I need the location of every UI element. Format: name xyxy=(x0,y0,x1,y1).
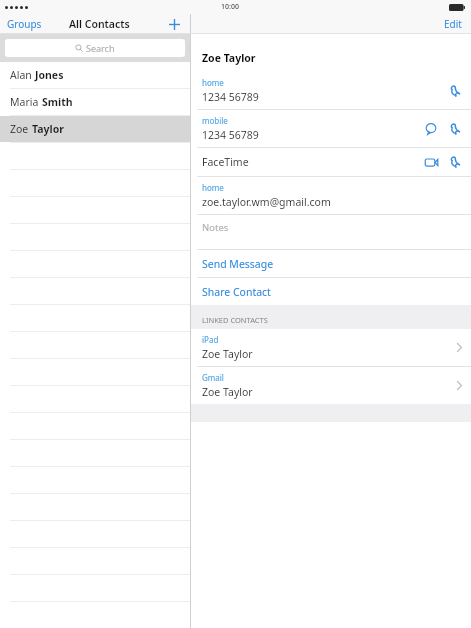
button[interactable]: Groups xyxy=(4,15,45,33)
staticText: Zoe Taylor xyxy=(202,51,256,65)
staticText: 1234 56789 xyxy=(202,90,259,104)
button[interactable]: Notes xyxy=(191,215,471,249)
button[interactable]: FaceTime xyxy=(191,148,471,176)
staticText: Jones xyxy=(35,68,64,82)
button[interactable]: iPad xyxy=(191,329,471,366)
button[interactable]: Edit xyxy=(441,15,465,33)
staticText: zoe.taylor.wm@gmail.com xyxy=(202,195,331,209)
staticText: Alan xyxy=(10,68,35,82)
button[interactable]: mobile xyxy=(191,110,471,147)
staticText: iPad xyxy=(202,334,219,345)
staticText: Zoe Taylor xyxy=(202,347,253,361)
button[interactable]: Share Contact xyxy=(191,278,471,305)
button[interactable]: FaceTime video xyxy=(423,154,439,170)
staticText: FaceTime xyxy=(202,155,249,169)
button[interactable]: Maria xyxy=(0,89,190,115)
button[interactable]: Alan xyxy=(0,62,190,88)
staticText: All Contacts xyxy=(69,17,130,31)
staticText: home xyxy=(202,182,224,193)
staticText: Zoe xyxy=(10,122,32,136)
staticText: Notes xyxy=(202,221,229,234)
button[interactable]: Call xyxy=(447,154,463,170)
staticText: Smith xyxy=(42,95,73,109)
staticText: Search xyxy=(86,42,115,54)
button[interactable]: home xyxy=(191,177,471,214)
button[interactable]: Zoe xyxy=(0,116,190,142)
staticText: LINKED CONTACTS xyxy=(202,315,268,325)
staticText: Send Message xyxy=(202,257,274,271)
staticText: Taylor xyxy=(32,122,64,136)
button[interactable]: Add contact xyxy=(166,16,182,32)
button[interactable]: Send message xyxy=(423,121,439,137)
button[interactable]: home xyxy=(191,72,471,109)
staticText: Edit xyxy=(444,17,462,31)
button[interactable]: Call xyxy=(447,121,463,137)
staticText: home xyxy=(202,77,224,88)
staticText: 10:00 xyxy=(221,2,239,12)
staticText: 1234 56789 xyxy=(202,128,259,142)
staticText: Maria xyxy=(10,95,42,109)
button[interactable]: Send Message xyxy=(191,250,471,277)
staticText: Gmail xyxy=(202,372,224,383)
button[interactable]: Call xyxy=(447,83,463,99)
staticText: Zoe Taylor xyxy=(202,385,253,399)
button[interactable]: Gmail xyxy=(191,367,471,404)
staticText: Groups xyxy=(7,17,42,31)
staticText: Share Contact xyxy=(202,285,271,299)
button[interactable]: Search xyxy=(5,39,185,57)
staticText: mobile xyxy=(202,115,228,126)
